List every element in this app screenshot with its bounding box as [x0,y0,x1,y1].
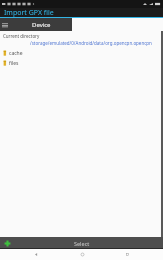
button[interactable]: Add [0,237,14,249]
staticText: Device [32,21,51,29]
button[interactable]: Menu [0,18,72,31]
staticText: files [9,60,19,67]
button[interactable]: files [0,59,163,67]
other: Menu [0,18,10,31]
button[interactable]: Select [52,237,112,249]
button[interactable]: Recents [118,249,136,260]
staticText: Current directory [3,33,40,39]
staticText: Select [74,240,90,247]
staticText: cache [9,50,23,57]
button[interactable]: Home [73,249,91,260]
staticText: Import GPX file [4,8,54,17]
button[interactable]: Back [27,249,45,260]
staticText: /storage/emulated/0/Android/data/org.ope… [30,40,152,46]
button[interactable]: cache [0,49,163,57]
